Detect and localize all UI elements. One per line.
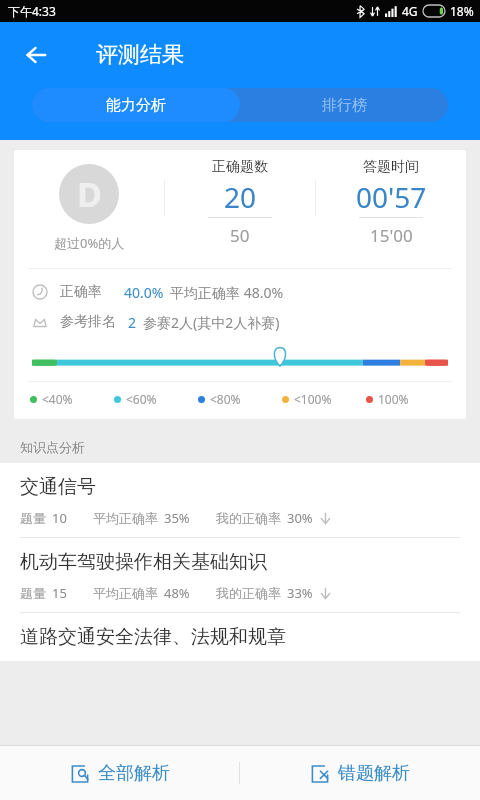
staticText: 平均正确率 (93, 585, 158, 601)
staticText: 平均正确率 (93, 510, 158, 526)
staticText: <40% (42, 391, 73, 407)
staticText: 15'00 (370, 224, 413, 247)
staticText: 30% (287, 509, 313, 527)
staticText: 全部解析 (98, 762, 170, 785)
staticText: 50 (230, 224, 250, 247)
button[interactable]: 道路交通安全法律、法规和规章 (0, 613, 480, 661)
button[interactable]: 能力分析 (32, 88, 240, 122)
button[interactable]: 机动车驾驶操作相关基础知识 (0, 538, 480, 612)
staticText: 00'57 (356, 178, 427, 216)
staticText: 40.0% (124, 283, 164, 302)
staticText: 平均正确率 48.0% (170, 283, 284, 302)
staticText: 交通信号 (20, 475, 96, 499)
staticText: 15 (52, 584, 67, 602)
staticText: 能力分析 (106, 96, 166, 115)
staticText: 题量 (20, 510, 46, 526)
staticText: 4G (402, 3, 418, 19)
staticText: 33% (287, 584, 313, 602)
staticText: 48% (164, 584, 190, 602)
button[interactable]: Back (14, 33, 58, 77)
staticText: 18% (450, 3, 474, 19)
staticText: 评测结果 (96, 41, 184, 69)
staticText: D (77, 171, 102, 217)
staticText: 2 (128, 313, 137, 332)
staticText: 超过0%的人 (54, 234, 125, 252)
staticText: 我的正确率 (216, 585, 281, 601)
staticText: 参赛2人(其中2人补赛) (143, 313, 280, 332)
staticText: 题量 (20, 585, 46, 601)
staticText: 机动车驾驶操作相关基础知识 (20, 550, 267, 574)
staticText: 正确题数 (212, 158, 268, 176)
button[interactable]: 排行榜 (240, 88, 448, 122)
staticText: 道路交通安全法律、法规和规章 (20, 625, 286, 649)
button[interactable]: 交通信号 (0, 463, 480, 537)
staticText: 100% (378, 391, 409, 407)
staticText: 正确率 (60, 283, 102, 301)
button[interactable]: 全部解析 (0, 746, 239, 800)
staticText: 知识点分析 (20, 439, 85, 455)
staticText: <100% (294, 391, 332, 407)
staticText: <60% (126, 391, 157, 407)
staticText: 10 (52, 509, 67, 527)
staticText: 我的正确率 (216, 510, 281, 526)
staticText: <80% (210, 391, 241, 407)
staticText: 错题解析 (338, 762, 410, 785)
staticText: 参考排名 (60, 313, 116, 331)
staticText: 下午4:33 (8, 3, 56, 19)
staticText: 35% (164, 509, 190, 527)
staticText: 20 (224, 178, 257, 216)
staticText: 排行榜 (322, 96, 367, 115)
button[interactable]: 错题解析 (240, 746, 480, 800)
staticText: 答题时间 (363, 158, 419, 176)
